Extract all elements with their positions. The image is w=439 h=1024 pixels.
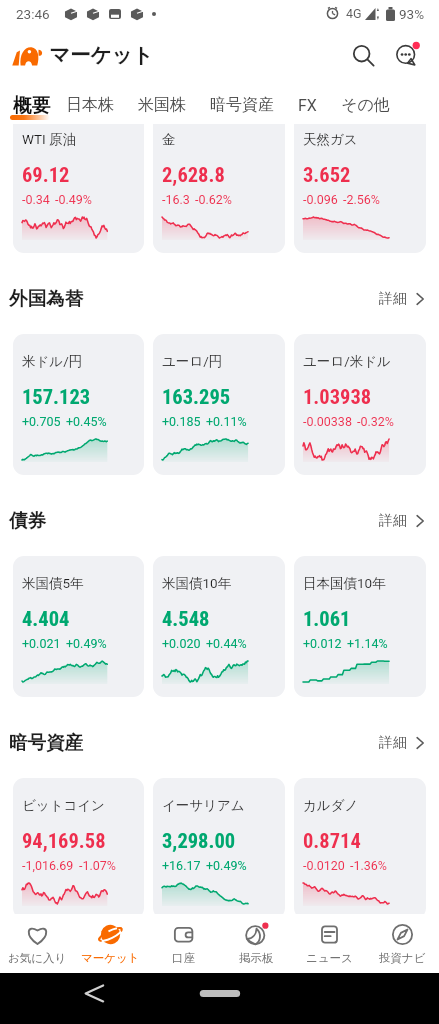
button[interactable]: 詳細 bbox=[373, 505, 428, 537]
button[interactable]: ニュース bbox=[293, 914, 366, 973]
staticText: 詳細 bbox=[379, 734, 407, 752]
button[interactable]: 米国債10年 bbox=[153, 556, 285, 697]
staticText: 金 bbox=[162, 131, 176, 148]
staticText: 掲示板 bbox=[239, 951, 274, 965]
staticText: 詳細 bbox=[379, 512, 407, 530]
staticText: 0.8714 bbox=[303, 829, 361, 853]
button[interactable]: 米国債5年 bbox=[13, 556, 144, 697]
staticText: 1.061 bbox=[303, 607, 351, 631]
staticText: その他 bbox=[341, 95, 390, 115]
staticText: -2.56% bbox=[343, 192, 380, 207]
staticText: +0.021 bbox=[22, 636, 61, 651]
staticText: 米国株 bbox=[138, 95, 186, 115]
staticText: ビットコイン bbox=[22, 797, 105, 814]
button[interactable]: 詳細 bbox=[373, 283, 428, 315]
staticText: ユーロ/米ドル bbox=[303, 353, 391, 370]
button[interactable]: 日本株 bbox=[54, 82, 126, 124]
staticText: +0.45% bbox=[66, 414, 107, 429]
staticText: +0.44% bbox=[206, 636, 247, 651]
button[interactable]: カルダノ bbox=[294, 778, 426, 914]
staticText: ニュース bbox=[306, 951, 353, 965]
staticText: +0.705 bbox=[22, 414, 61, 429]
staticText: FX bbox=[298, 96, 317, 115]
staticText: イーサリアム bbox=[162, 797, 245, 814]
button[interactable]: ユーロ/米ドル bbox=[294, 334, 426, 475]
staticText: +1.14% bbox=[347, 636, 388, 651]
staticText: 23:46 bbox=[16, 6, 50, 22]
staticText: -0.096 bbox=[303, 192, 338, 207]
staticText: 日本国債10年 bbox=[303, 575, 386, 592]
button[interactable]: FX bbox=[286, 82, 329, 124]
staticText: 概要 bbox=[13, 94, 50, 117]
button[interactable]: 金 bbox=[153, 124, 285, 253]
staticText: WTI 原油 bbox=[22, 131, 77, 148]
staticText: 2,628.8 bbox=[162, 163, 225, 187]
staticText: お気に入り bbox=[8, 951, 67, 965]
staticText: 天然ガス bbox=[303, 131, 358, 148]
staticText: 163.295 bbox=[162, 385, 231, 409]
staticText: -1.36% bbox=[350, 858, 387, 873]
staticText: カルダノ bbox=[303, 797, 359, 814]
staticText: +0.11% bbox=[206, 414, 247, 429]
staticText: -0.0120 bbox=[303, 858, 345, 873]
staticText: 4G bbox=[346, 6, 362, 21]
staticText: +0.185 bbox=[162, 414, 201, 429]
staticText: 4.548 bbox=[162, 607, 210, 631]
staticText: -0.49% bbox=[55, 192, 92, 207]
staticText: +0.020 bbox=[162, 636, 201, 651]
button[interactable]: イーサリアム bbox=[153, 778, 285, 914]
staticText: 債券 bbox=[9, 509, 46, 532]
staticText: -0.32% bbox=[357, 414, 394, 429]
staticText: 米ドル/円 bbox=[22, 353, 83, 370]
staticText: -0.62% bbox=[195, 192, 232, 207]
staticText: -1.07% bbox=[79, 858, 116, 873]
staticText: 94,169.58 bbox=[22, 829, 106, 853]
staticText: -0.00338 bbox=[303, 414, 352, 429]
button[interactable]: お気に入り bbox=[0, 914, 74, 973]
staticText: 米国債10年 bbox=[162, 575, 232, 592]
button[interactable]: 検索 bbox=[341, 33, 385, 77]
button[interactable]: ビットコイン bbox=[13, 778, 144, 914]
button[interactable]: ユーロ/円 bbox=[153, 334, 285, 475]
button[interactable]: その他 bbox=[329, 82, 402, 124]
staticText: 口座 bbox=[172, 951, 195, 965]
button[interactable]: 米ドル/円 bbox=[13, 334, 144, 475]
button[interactable]: 口座 bbox=[147, 914, 220, 973]
staticText: マーケット bbox=[81, 951, 140, 965]
staticText: ユーロ/円 bbox=[162, 353, 223, 370]
staticText: 暗号資産 bbox=[9, 731, 83, 754]
staticText: +0.012 bbox=[303, 636, 342, 651]
staticText: 投資ナビ bbox=[379, 951, 426, 965]
staticText: 1.03938 bbox=[303, 385, 372, 409]
button[interactable]: 日本国債10年 bbox=[294, 556, 426, 697]
staticText: マーケット bbox=[49, 42, 154, 68]
staticText: 外国為替 bbox=[9, 287, 83, 310]
button[interactable]: メッセージ bbox=[385, 33, 429, 77]
staticText: +16.17 bbox=[162, 858, 201, 873]
staticText: +0.49% bbox=[66, 636, 107, 651]
button[interactable]: 投資ナビ bbox=[366, 914, 439, 973]
button[interactable]: 天然ガス bbox=[294, 124, 426, 253]
staticText: -1,016.69 bbox=[22, 858, 74, 873]
staticText: 日本株 bbox=[66, 95, 114, 115]
staticText: 4.404 bbox=[22, 607, 70, 631]
staticText: +0.49% bbox=[206, 858, 247, 873]
button[interactable]: 掲示板 bbox=[220, 914, 293, 973]
staticText: 157.123 bbox=[22, 385, 91, 409]
staticText: 3,298.00 bbox=[162, 829, 236, 853]
button[interactable]: 概要 bbox=[11, 82, 54, 124]
button[interactable]: 米国株 bbox=[126, 82, 198, 124]
button[interactable]: マーケット bbox=[74, 914, 147, 973]
staticText: 暗号資産 bbox=[210, 95, 274, 115]
staticText: 69.12 bbox=[22, 163, 70, 187]
staticText: 米国債5年 bbox=[22, 575, 84, 592]
staticText: -16.3 bbox=[162, 192, 190, 207]
staticText: -0.34 bbox=[22, 192, 50, 207]
staticText: 詳細 bbox=[379, 290, 407, 308]
button[interactable]: 暗号資産 bbox=[198, 82, 286, 124]
button[interactable]: 詳細 bbox=[373, 727, 428, 759]
staticText: 93% bbox=[399, 6, 425, 22]
staticText: 3.652 bbox=[303, 163, 351, 187]
button[interactable]: WTI 原油 bbox=[13, 124, 144, 253]
